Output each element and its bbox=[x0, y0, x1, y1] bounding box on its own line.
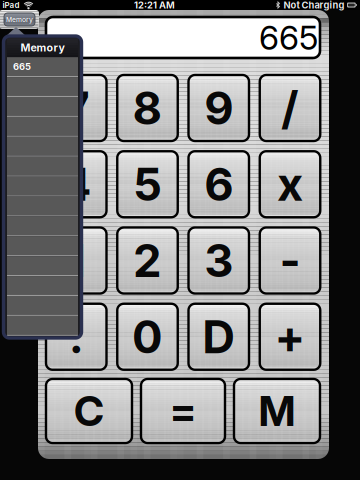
staticText: C bbox=[74, 386, 104, 436]
button[interactable]: x bbox=[260, 151, 320, 217]
button[interactable]: 4 bbox=[46, 151, 106, 217]
button[interactable]: 8 bbox=[117, 75, 178, 141]
staticText: Memory bbox=[20, 41, 64, 54]
staticText: 4 bbox=[61, 157, 92, 212]
staticText: iPad bbox=[2, 0, 19, 10]
button[interactable]: 1 bbox=[46, 227, 106, 293]
staticText: 3 bbox=[204, 233, 233, 288]
button[interactable]: = bbox=[141, 379, 225, 443]
button[interactable]: + bbox=[260, 304, 320, 370]
staticText: 9 bbox=[204, 81, 233, 135]
staticText: M bbox=[258, 386, 295, 436]
staticText: 7 bbox=[63, 81, 89, 135]
button[interactable]: 5 bbox=[117, 151, 178, 217]
button[interactable]: - bbox=[260, 227, 320, 293]
button[interactable]: 7 bbox=[46, 75, 106, 141]
staticText: + bbox=[274, 309, 305, 364]
button[interactable]: 2 bbox=[117, 227, 178, 293]
button[interactable]: . bbox=[46, 304, 106, 370]
button[interactable]: Memory bbox=[4, 13, 35, 26]
staticText: Memory bbox=[6, 15, 33, 24]
staticText: x bbox=[277, 157, 303, 212]
staticText: = bbox=[169, 386, 196, 436]
button[interactable]: 6 bbox=[188, 151, 249, 217]
button[interactable]: 0 bbox=[117, 304, 178, 370]
staticText: 8 bbox=[132, 81, 162, 135]
staticText: 6 bbox=[204, 157, 233, 212]
button[interactable]: / bbox=[260, 75, 320, 141]
staticText: - bbox=[279, 233, 300, 288]
staticText: . bbox=[69, 309, 84, 364]
staticText: D bbox=[202, 309, 235, 364]
button[interactable]: 9 bbox=[188, 75, 249, 141]
staticText: Not Charging bbox=[284, 0, 345, 11]
staticText: 665 bbox=[259, 17, 318, 58]
staticText: 5 bbox=[133, 157, 162, 212]
button[interactable]: C bbox=[46, 379, 132, 443]
button[interactable]: D bbox=[188, 304, 249, 370]
button[interactable]: M bbox=[234, 379, 320, 443]
staticText: 0 bbox=[132, 309, 163, 364]
staticText: 12:21 AM bbox=[134, 0, 175, 11]
button[interactable]: 3 bbox=[188, 227, 249, 293]
staticText: 665 bbox=[13, 61, 31, 72]
staticText: / bbox=[281, 81, 299, 135]
staticText: 1 bbox=[66, 233, 86, 288]
staticText: 2 bbox=[133, 233, 162, 288]
